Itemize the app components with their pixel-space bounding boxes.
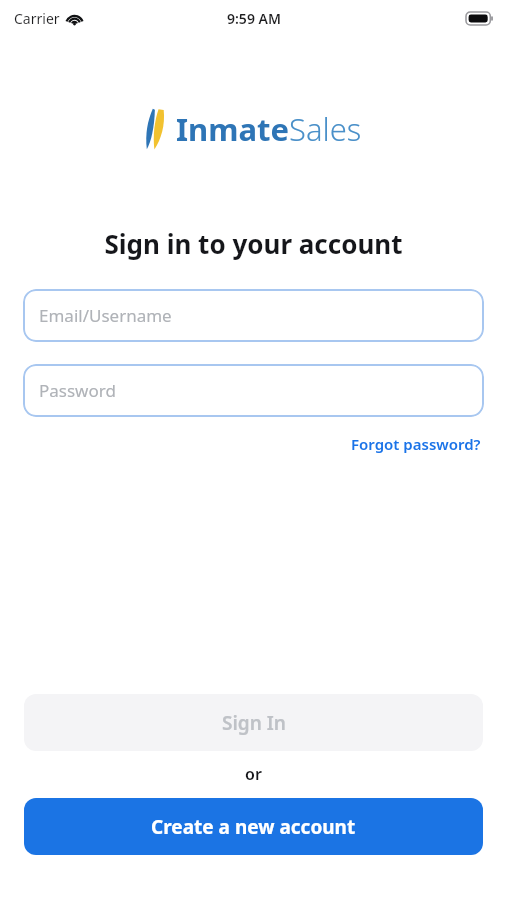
button[interactable]: Create a new account bbox=[24, 798, 483, 855]
staticText: Sign In bbox=[222, 710, 286, 736]
staticText: Carrier bbox=[14, 9, 60, 28]
staticText: Inmate bbox=[176, 108, 289, 150]
button[interactable]: Forgot password? bbox=[349, 431, 483, 457]
staticText: Create a new account bbox=[151, 814, 356, 840]
staticText: Email/Username bbox=[39, 304, 172, 327]
staticText: or bbox=[0, 763, 507, 785]
staticText: Sales bbox=[289, 108, 362, 150]
staticText: Forgot password? bbox=[351, 434, 481, 454]
staticText: 9:59 AM bbox=[227, 9, 281, 28]
button[interactable]: Sign In bbox=[24, 694, 483, 751]
button[interactable]: Password bbox=[23, 364, 484, 417]
staticText: Password bbox=[39, 379, 116, 402]
staticText: Sign in to your account bbox=[0, 226, 507, 261]
button[interactable]: Email/Username bbox=[23, 289, 484, 342]
